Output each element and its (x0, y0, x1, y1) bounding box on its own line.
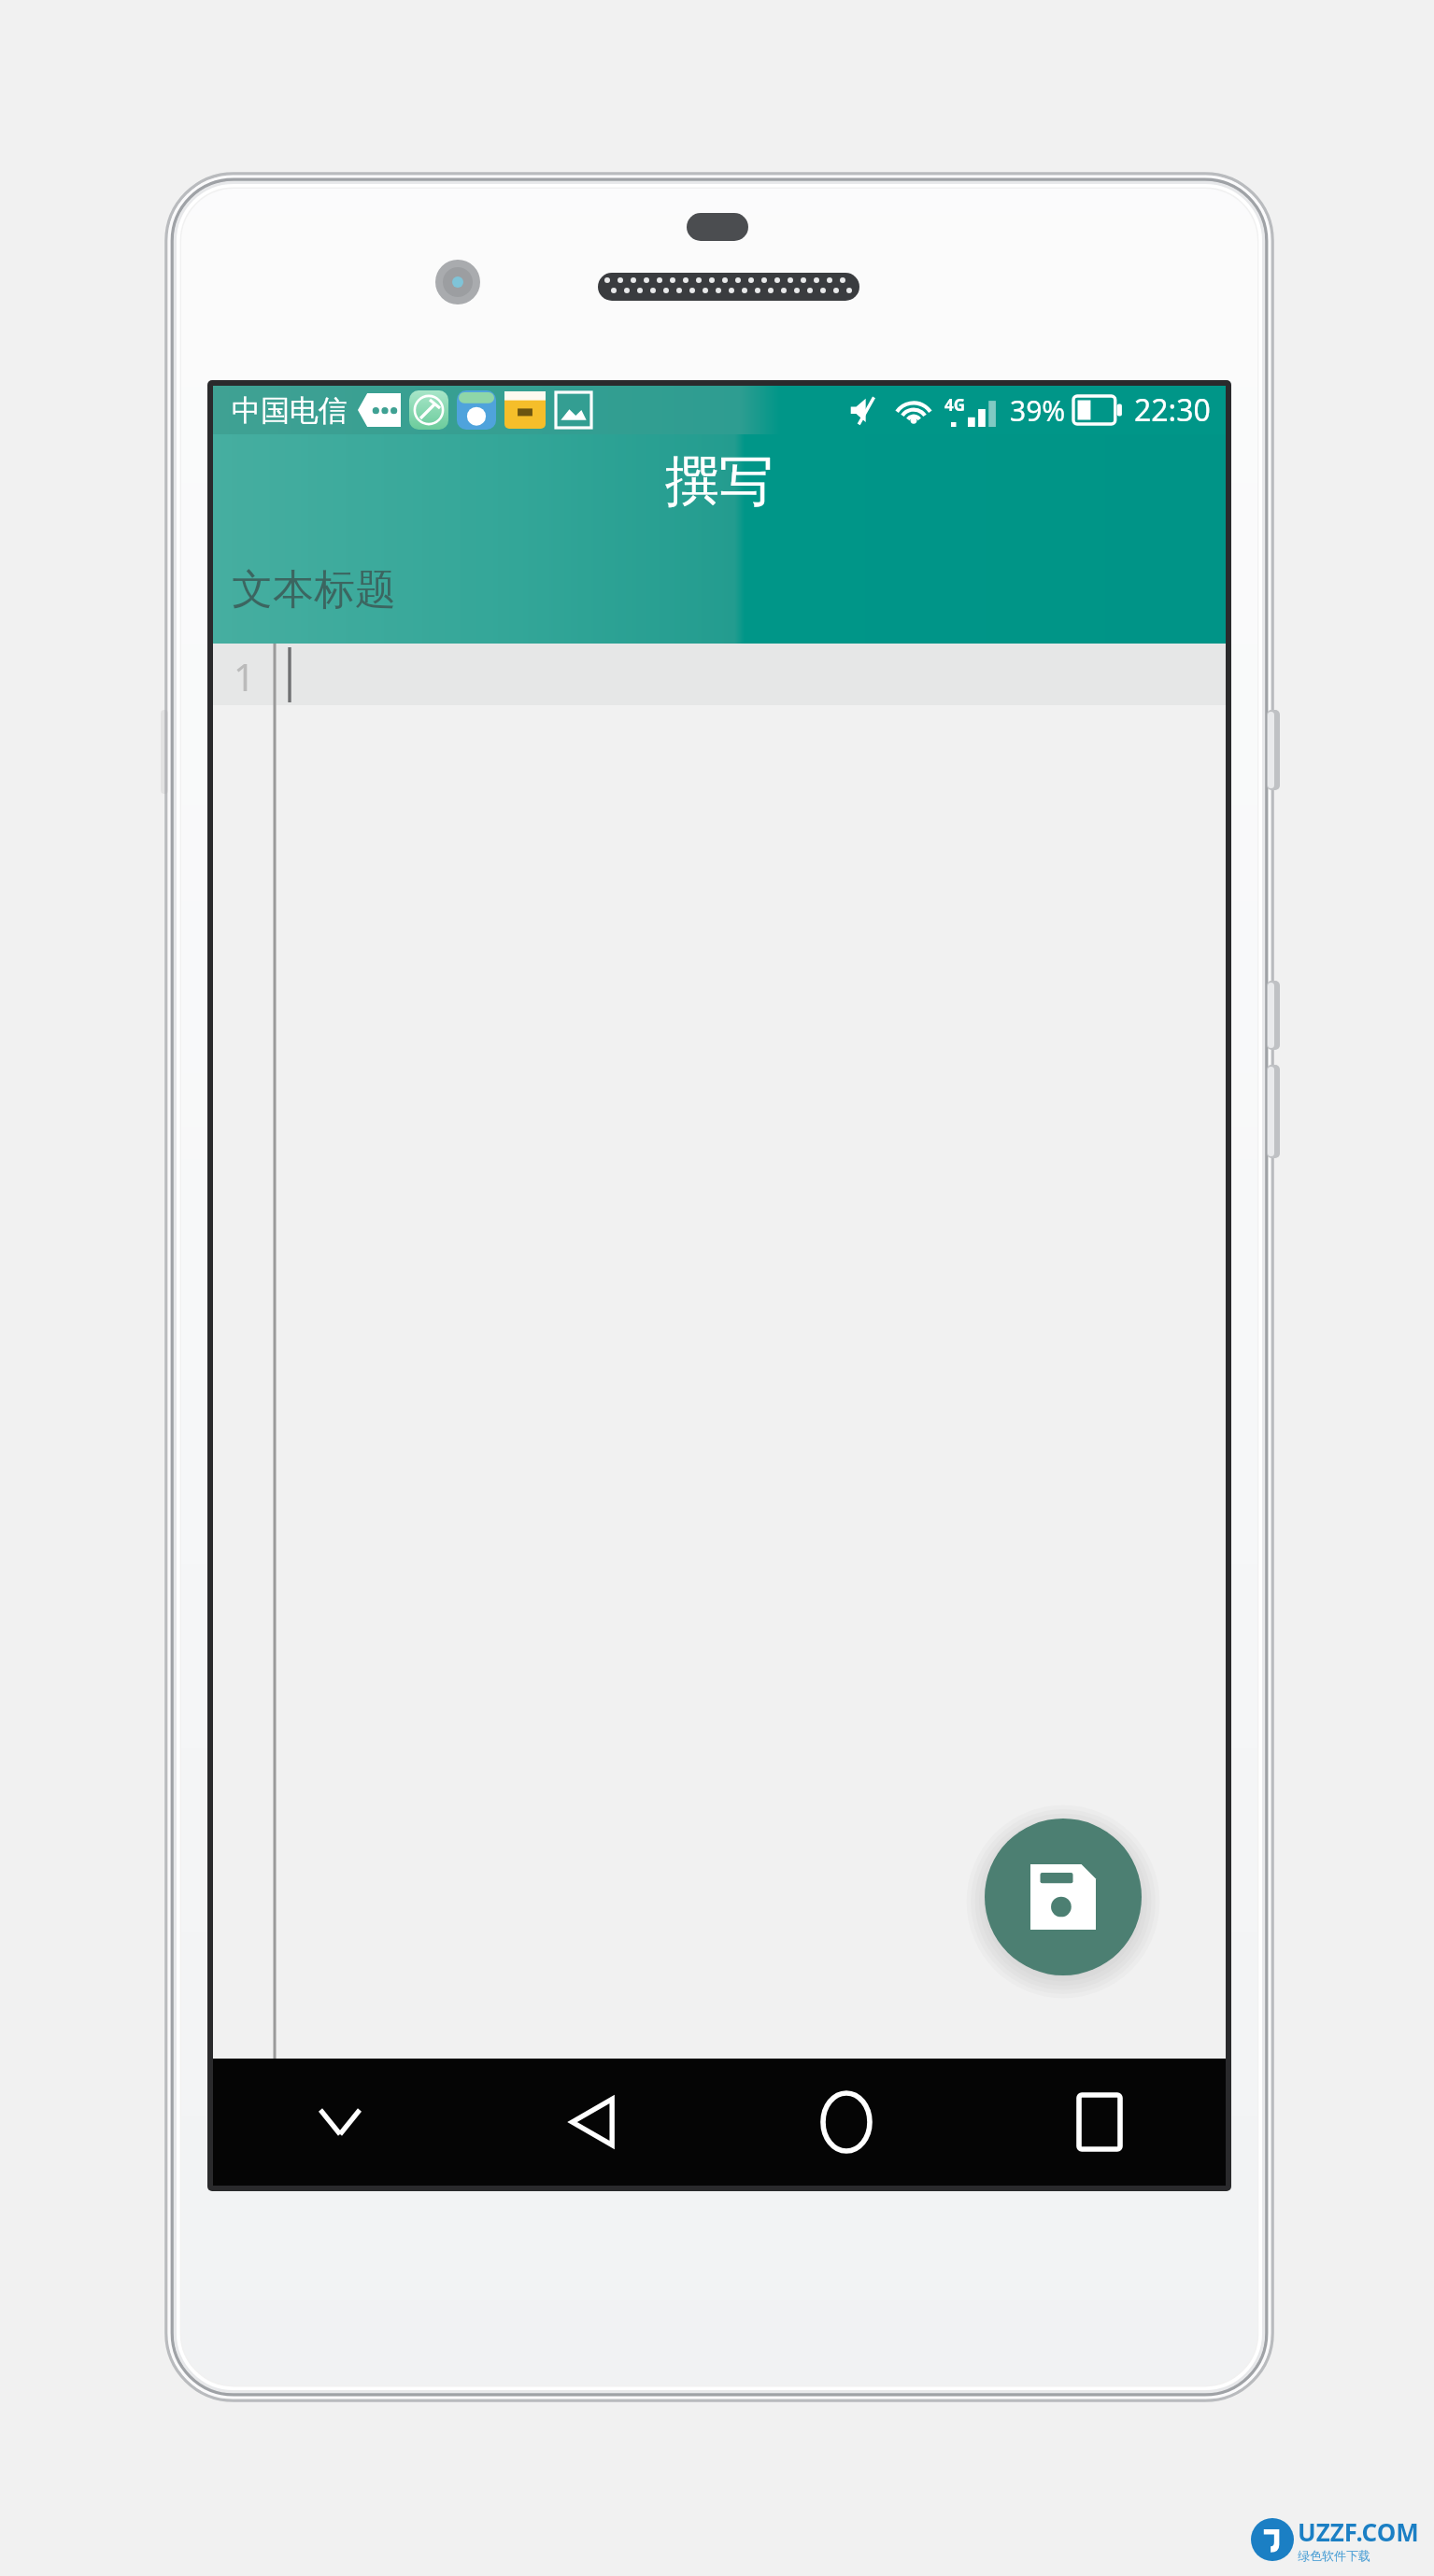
staticText: 4G (944, 394, 966, 416)
staticText: 39% (1010, 391, 1066, 430)
staticText: 22:30 (1134, 389, 1211, 431)
button[interactable]: 1 (213, 644, 1226, 2059)
button[interactable]: Back (466, 2059, 719, 2186)
button[interactable]: Recents (973, 2059, 1226, 2186)
staticText: 中国电信 (232, 392, 348, 429)
button[interactable]: Save (985, 1819, 1142, 1975)
staticText: UZZF.COM (1298, 2515, 1419, 2548)
staticText: 1 (234, 651, 255, 701)
button[interactable]: 文本标题 (232, 564, 396, 616)
staticText: 绿色软件下载 (1298, 2548, 1370, 2563)
button[interactable]: Home (719, 2059, 973, 2186)
button[interactable]: Hide keyboard (213, 2059, 466, 2186)
button[interactable]: 撰写 (665, 447, 774, 516)
